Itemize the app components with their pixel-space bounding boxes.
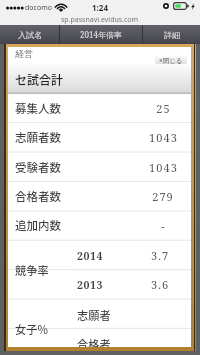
staticText: 合格者 <box>77 336 111 347</box>
button[interactable]: Address bar <box>0 14 200 25</box>
staticText: 志願者数 <box>15 129 61 146</box>
staticText: 25 <box>156 101 171 116</box>
staticText: 入試名 <box>18 30 42 40</box>
staticText: sp.passnavi.evidus.com <box>61 15 139 25</box>
button[interactable]: 入試名 <box>0 25 59 44</box>
staticText: 経営 <box>15 48 33 59</box>
button[interactable]: 合格者数 <box>8 182 191 211</box>
staticText: 受験者数 <box>15 159 61 176</box>
staticText: セ試合計 <box>15 71 64 88</box>
staticText: 1043 <box>149 130 178 145</box>
staticText: 合格者数 <box>15 188 61 205</box>
button[interactable]: 志願者数 <box>8 123 191 152</box>
staticText: ×閉じる <box>159 56 183 65</box>
staticText: docomo <box>25 3 52 13</box>
staticText: 詳細 <box>164 30 180 40</box>
button[interactable]: 志願者 <box>72 300 191 329</box>
staticText: 2014 <box>77 249 104 263</box>
button[interactable]: 追加内数 <box>8 211 191 240</box>
button[interactable]: 合格者 <box>72 329 191 347</box>
staticText: 279 <box>152 189 174 204</box>
staticText: 1043 <box>149 160 178 175</box>
staticText: 女子% <box>15 321 48 337</box>
staticText: 2013 <box>77 278 104 292</box>
staticText: 募集人数 <box>15 100 61 117</box>
staticText: - <box>161 218 166 233</box>
staticText: 3.6 <box>151 277 170 292</box>
staticText: 3.7 <box>151 248 170 263</box>
button[interactable]: 2014 <box>72 241 191 270</box>
button[interactable]: 受験者数 <box>8 153 191 182</box>
staticText: 1:24 <box>92 2 108 13</box>
button[interactable]: 募集人数 <box>8 94 191 123</box>
staticText: 2014年倍率 <box>80 29 122 40</box>
button[interactable]: 2013 <box>72 270 191 299</box>
staticText: 志願者 <box>77 307 111 323</box>
staticText: 追加内数 <box>15 217 61 234</box>
button[interactable]: 2014年倍率 <box>60 25 142 44</box>
button[interactable]: 詳細 <box>143 25 200 44</box>
staticText: 競争率 <box>15 262 49 278</box>
button[interactable]: ×閉じる <box>155 55 187 65</box>
